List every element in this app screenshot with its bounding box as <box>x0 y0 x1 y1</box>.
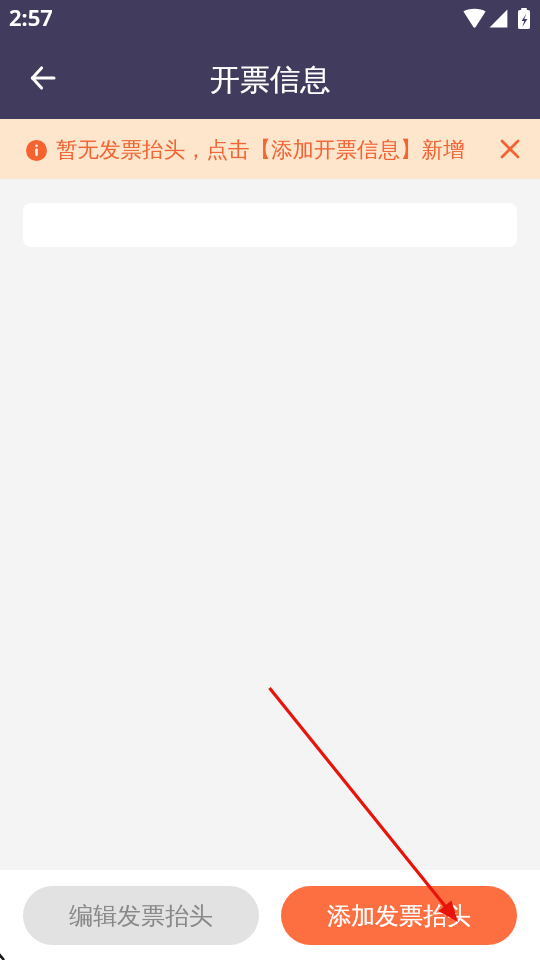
staticText: 2:57 <box>9 2 53 32</box>
button[interactable]: 添加发票抬头 <box>281 886 517 945</box>
staticText: 编辑发票抬头 <box>69 901 213 931</box>
staticText: 添加发票抬头 <box>327 901 471 931</box>
staticText: 暂无发票抬头，点击【添加开票信息】新增 <box>56 136 465 163</box>
staticText: 开票信息 <box>210 61 330 99</box>
button[interactable]: Close <box>493 132 527 166</box>
button[interactable]: 编辑发票抬头 <box>23 886 259 945</box>
button[interactable]: Back <box>19 54 67 102</box>
